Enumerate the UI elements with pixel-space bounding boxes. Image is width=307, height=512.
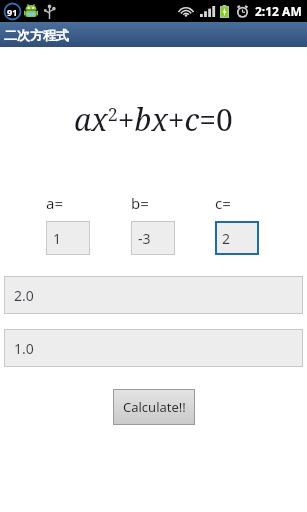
- staticText: -3: [138, 229, 151, 248]
- staticText: c=: [215, 193, 231, 213]
- button[interactable]: 1.0: [4, 329, 303, 367]
- staticText: 二次方程式: [4, 27, 69, 43]
- staticText: Calculate!!: [123, 398, 186, 416]
- staticText: 1: [53, 229, 62, 248]
- button[interactable]: 2: [215, 221, 259, 255]
- staticText: ax2+bx+c=0: [74, 99, 233, 140]
- staticText: 1.0: [14, 339, 34, 358]
- staticText: a=: [46, 193, 63, 213]
- staticText: 2: [222, 229, 231, 248]
- staticText: 2:12 AM: [255, 3, 302, 19]
- button[interactable]: 2.0: [4, 276, 303, 314]
- staticText: 2.0: [14, 286, 34, 305]
- button[interactable]: 1: [46, 221, 90, 255]
- button[interactable]: -3: [131, 221, 175, 255]
- button[interactable]: Calculate!!: [113, 389, 195, 425]
- staticText: b=: [131, 193, 149, 213]
- staticText: 91: [7, 6, 18, 18]
